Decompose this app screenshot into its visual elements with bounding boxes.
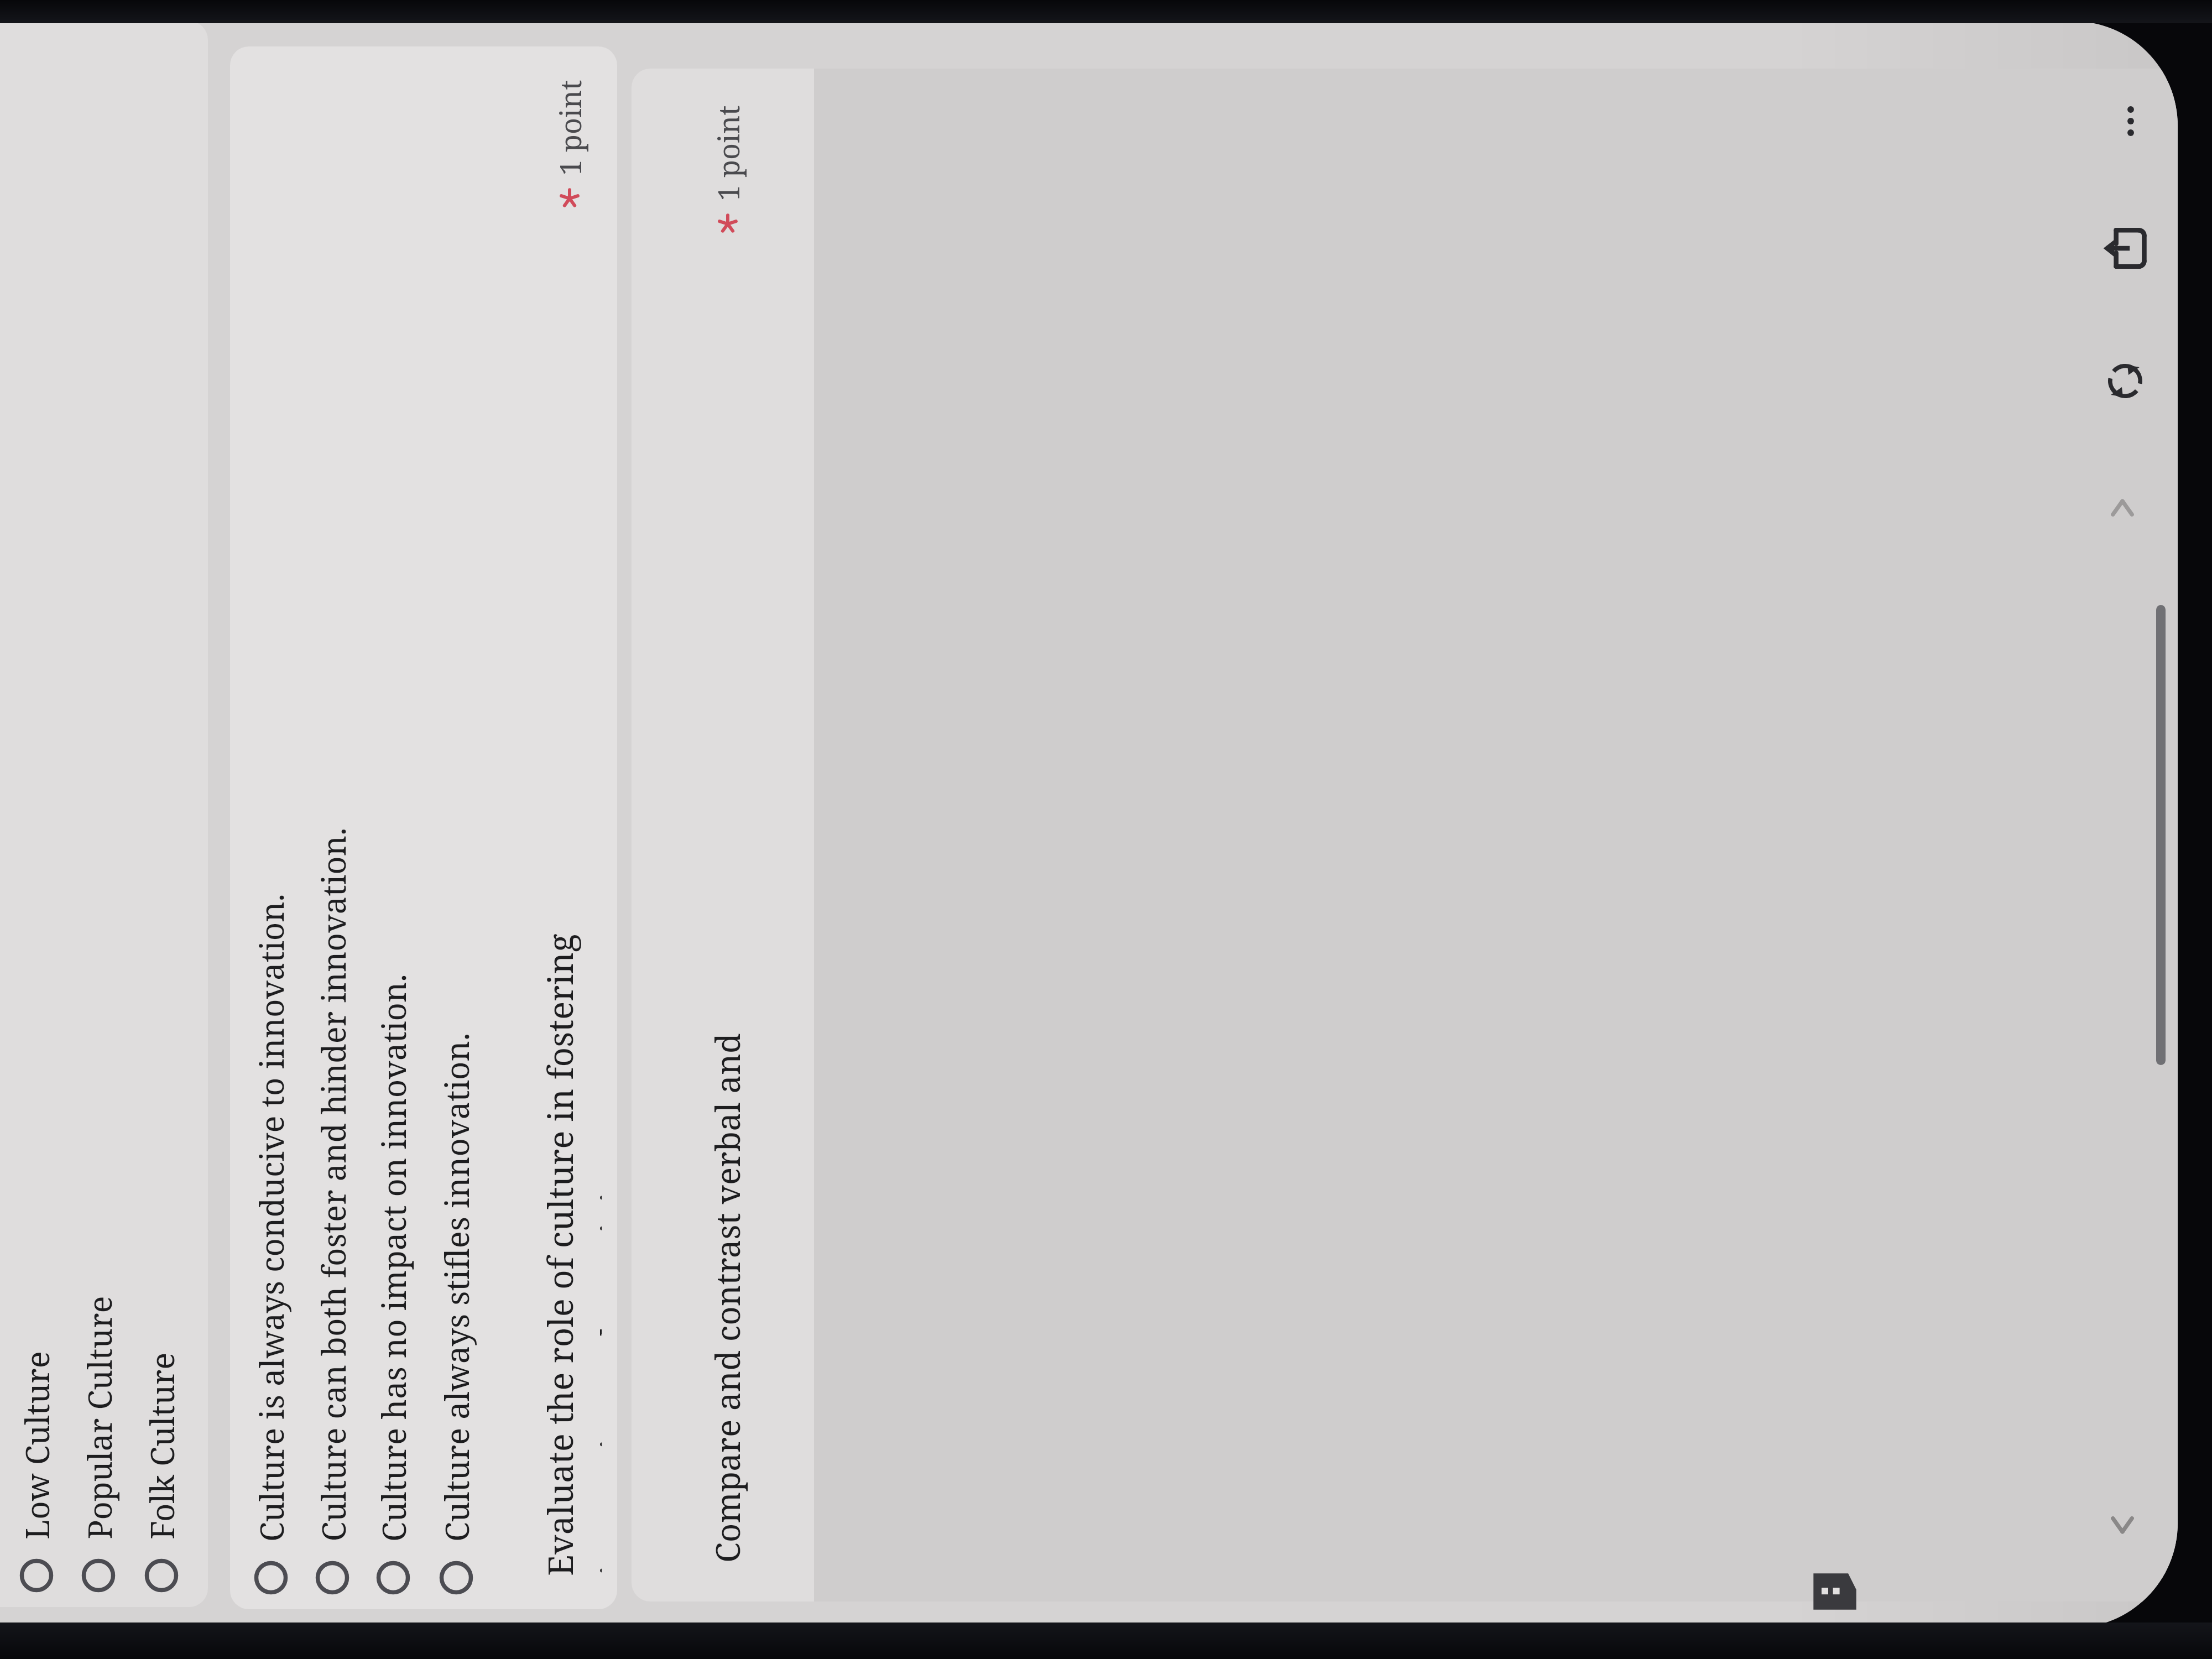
button[interactable]: Video off: [1802, 1558, 1868, 1625]
button[interactable]: Exit: [2089, 212, 2161, 284]
staticText: Culture can both foster and hinder innov…: [311, 827, 355, 1541]
staticText: Folk Culture: [140, 1352, 184, 1540]
staticText: Culture has no impact on innovation.: [372, 974, 415, 1542]
button[interactable]: Low Culture: [6, 21, 67, 1607]
staticText: Compare and contrast verbal and: [705, 1033, 750, 1563]
staticText: Culture is always conducive to innovatio…: [249, 893, 293, 1542]
staticText: 1 point: [550, 79, 589, 176]
button[interactable]: Refresh: [2089, 345, 2161, 417]
button[interactable]: Culture can both foster and hinder innov…: [302, 46, 363, 1609]
button[interactable]: Folk Culture: [129, 21, 194, 1607]
button[interactable]: Culture always stifles innovation.: [424, 46, 489, 1609]
button[interactable]: Culture is always conducive to innovatio…: [240, 46, 302, 1609]
staticText: Evaluate the role of culture in fosterin…: [536, 933, 602, 1576]
button[interactable]: Next question: [2084, 1485, 2161, 1563]
button[interactable]: Culture has no impact on innovation.: [363, 46, 424, 1609]
button[interactable]: Previous question: [2084, 470, 2161, 547]
button[interactable]: Popular Culture: [67, 21, 129, 1607]
staticText: Culture always stifles innovation.: [435, 1032, 478, 1542]
button[interactable]: More options: [2100, 91, 2161, 152]
staticText: 1 point: [708, 105, 747, 201]
staticText: Popular Culture: [77, 1296, 121, 1539]
staticText: Low Culture: [15, 1351, 59, 1540]
